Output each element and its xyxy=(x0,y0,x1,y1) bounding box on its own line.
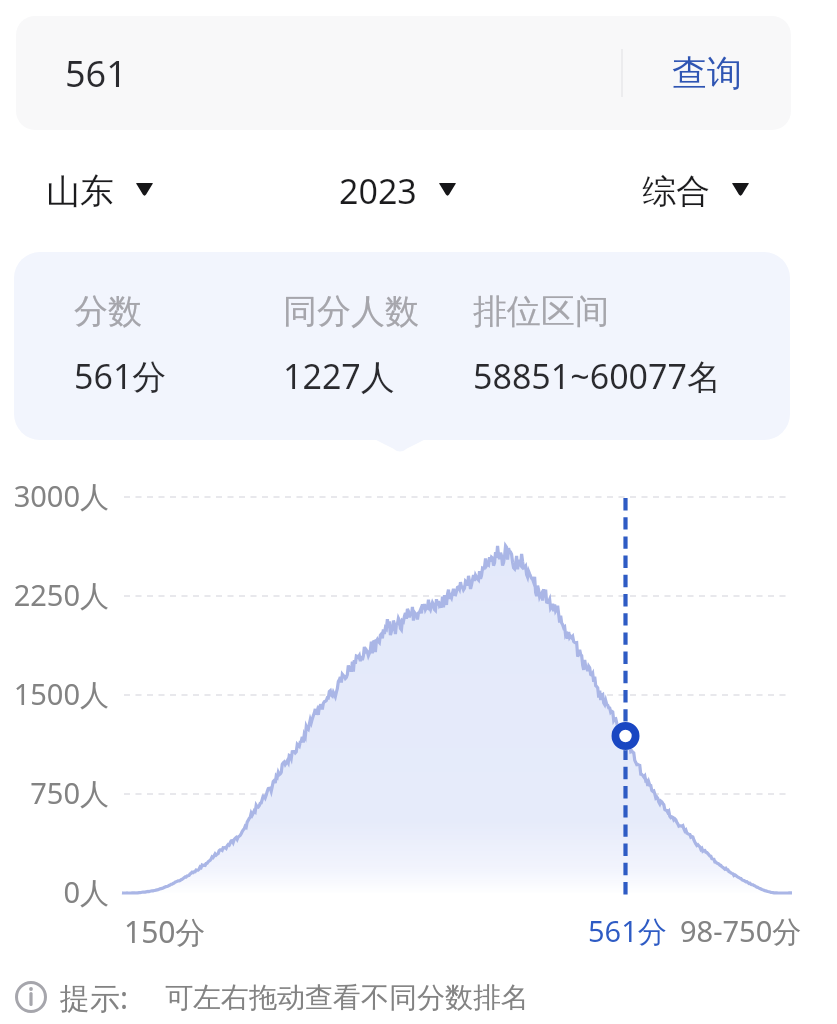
staticText: 98-750分 xyxy=(680,911,802,951)
staticText: 750人 xyxy=(30,773,109,813)
button[interactable]: Info xyxy=(14,976,529,1018)
staticText: 561 xyxy=(65,49,127,98)
button[interactable]: 561 xyxy=(65,16,621,130)
staticText: 561分 xyxy=(588,911,667,951)
staticText: 同分人数 xyxy=(283,290,419,333)
button[interactable]: 山东 xyxy=(46,162,154,221)
staticText: 可左右拖动查看不同分数排名 xyxy=(165,980,529,1015)
staticText: 排位区间 xyxy=(473,290,609,333)
staticText: 山东 xyxy=(46,170,114,213)
staticText: 2250人 xyxy=(13,575,109,615)
other: Info xyxy=(14,980,48,1014)
button[interactable]: Score distribution chart xyxy=(110,470,800,910)
button[interactable]: 查询 xyxy=(623,16,791,130)
staticText: 0人 xyxy=(63,872,109,912)
staticText: 提示: xyxy=(60,977,129,1018)
staticText: 1227人 xyxy=(283,353,395,399)
staticText: 查询 xyxy=(672,51,742,95)
staticText: 150分 xyxy=(124,911,206,952)
staticText: 1500人 xyxy=(13,674,109,714)
staticText: 分数 xyxy=(74,290,142,333)
staticText: 2023 xyxy=(339,168,417,214)
button[interactable]: 2023 xyxy=(339,160,457,222)
staticText: 58851~60077名 xyxy=(473,353,721,399)
staticText: 综合 xyxy=(642,170,710,213)
button[interactable]: 综合 xyxy=(642,162,750,221)
staticText: 561分 xyxy=(74,353,167,399)
staticText: 3000人 xyxy=(13,476,109,516)
